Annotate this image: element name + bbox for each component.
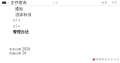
button[interactable]: 公告 (52, 1, 58, 4)
button[interactable]: 检索 (101, 1, 107, 4)
button[interactable]: App logo (0, 0, 8, 5)
button[interactable]: 登录 (107, 1, 120, 4)
staticText: 国家标准全文公开 (95, 58, 119, 61)
staticText: 实施日期 24 (9, 51, 26, 55)
staticText: 第1号 (13, 19, 21, 22)
staticText: 检索 (101, 1, 107, 4)
staticText: 公告 (52, 1, 58, 4)
staticText: 发布日期 2024 (9, 47, 30, 51)
staticText: 登录 (112, 1, 118, 4)
staticText: 通知 (15, 6, 23, 11)
staticText: 文件查询 (10, 0, 26, 5)
staticText: 第2号 (13, 25, 21, 28)
staticText: 管理办法 (13, 29, 29, 34)
staticText: 国家标准 (16, 12, 32, 17)
